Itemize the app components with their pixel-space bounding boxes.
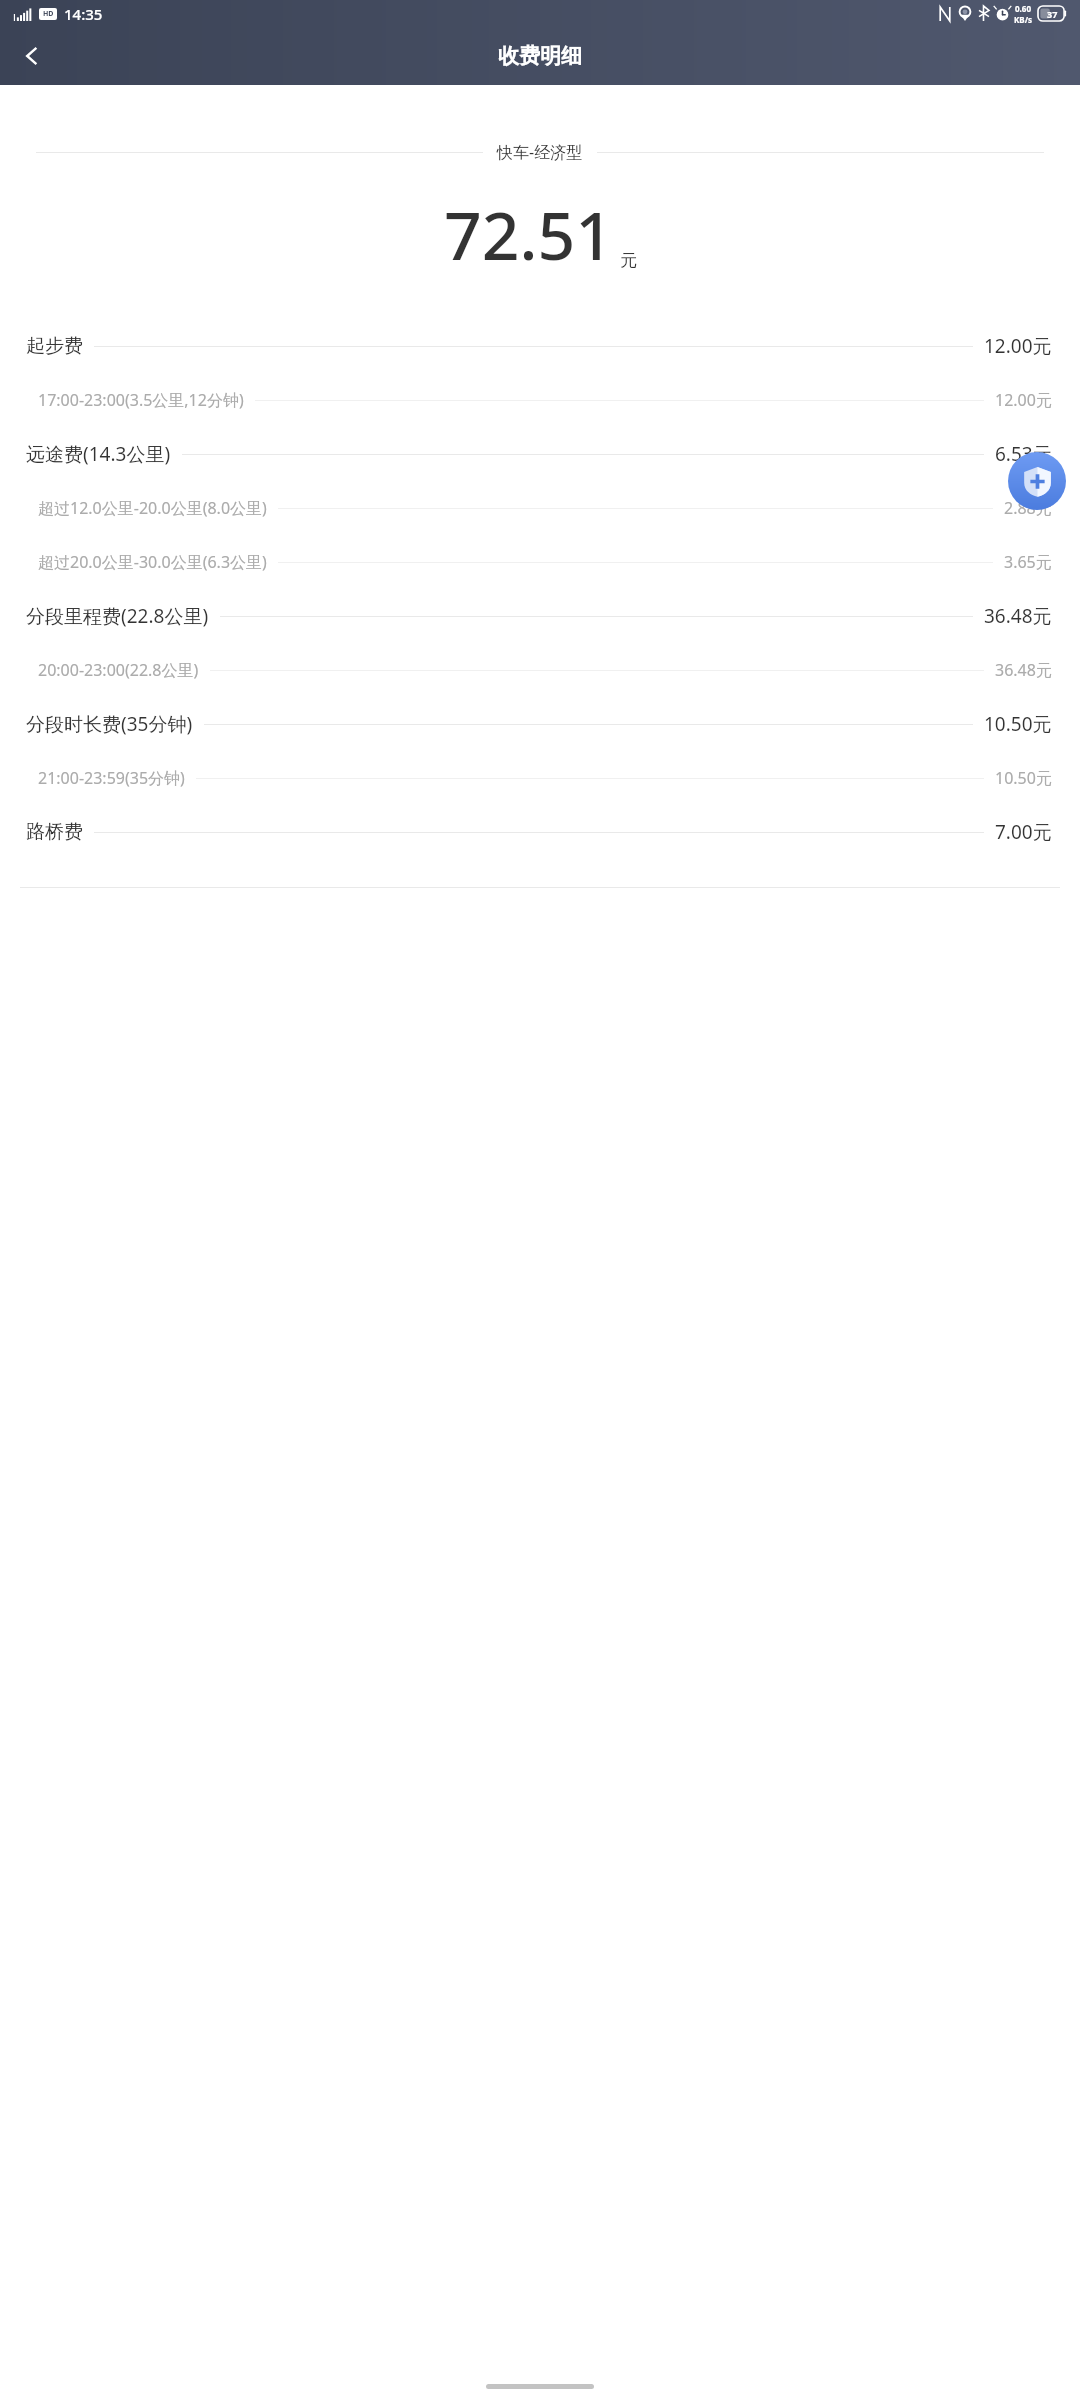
button[interactable]: Add insurance xyxy=(1008,452,1066,510)
button[interactable]: 分段里程费(22.8公里) xyxy=(0,589,1080,643)
staticText: 36.48元 xyxy=(995,659,1052,681)
staticText: 10.50元 xyxy=(995,767,1052,789)
staticText: KB/s xyxy=(1014,14,1032,25)
button[interactable]: 17:00-23:00(3.5公里,12分钟) xyxy=(0,373,1080,427)
staticText: 72.51 xyxy=(444,189,613,279)
staticText: 0.60 xyxy=(1015,3,1031,14)
staticText: 路桥费 xyxy=(26,820,83,844)
staticText: 36.48元 xyxy=(984,603,1052,629)
staticText: 37 xyxy=(1047,8,1058,20)
staticText: 分段里程费(22.8公里) xyxy=(26,603,209,629)
staticText: 7.00元 xyxy=(995,819,1052,845)
staticText: 17:00-23:00(3.5公里,12分钟) xyxy=(38,389,244,411)
staticText: HD xyxy=(43,9,54,19)
staticText: 21:00-23:59(35分钟) xyxy=(38,767,185,789)
button[interactable]: 20:00-23:00(22.8公里) xyxy=(0,643,1080,697)
button[interactable]: 21:00-23:59(35分钟) xyxy=(0,751,1080,805)
staticText: 12.00元 xyxy=(995,389,1052,411)
button[interactable]: Back xyxy=(8,32,56,80)
staticText: 超过20.0公里-30.0公里(6.3公里) xyxy=(38,551,267,573)
button[interactable]: 超过12.0公里-20.0公里(8.0公里) xyxy=(0,481,1080,535)
staticText: 超过12.0公里-20.0公里(8.0公里) xyxy=(38,497,267,519)
button[interactable]: 分段时长费(35分钟) xyxy=(0,697,1080,751)
staticText: 10.50元 xyxy=(984,711,1052,737)
button[interactable]: 超过20.0公里-30.0公里(6.3公里) xyxy=(0,535,1080,589)
staticText: 14:35 xyxy=(64,4,103,24)
staticText: 元 xyxy=(620,250,637,271)
staticText: 收费明细 xyxy=(498,43,582,69)
button[interactable]: 远途费(14.3公里) xyxy=(0,427,1080,481)
button[interactable]: 路桥费 xyxy=(0,805,1080,859)
button[interactable]: 起步费 xyxy=(0,319,1080,373)
staticText: 6.53元 xyxy=(995,441,1052,467)
staticText: 2.88元 xyxy=(1004,497,1052,519)
staticText: 20:00-23:00(22.8公里) xyxy=(38,659,199,681)
staticText: 3.65元 xyxy=(1004,551,1052,573)
staticText: 分段时长费(35分钟) xyxy=(26,711,193,737)
staticText: 远途费(14.3公里) xyxy=(26,441,171,467)
staticText: 起步费 xyxy=(26,334,83,358)
staticText: 快车-经济型 xyxy=(497,141,583,163)
staticText: 12.00元 xyxy=(984,333,1052,359)
